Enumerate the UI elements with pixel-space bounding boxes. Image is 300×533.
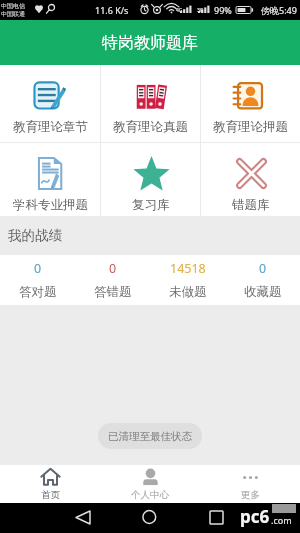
button[interactable]: 更多 bbox=[200, 465, 300, 503]
staticText: pc6 bbox=[240, 505, 270, 528]
staticText: 教育理论押题 bbox=[213, 119, 288, 135]
button[interactable]: 0 bbox=[225, 255, 300, 305]
button[interactable]: 学科专业押题 bbox=[0, 143, 100, 216]
staticText: 14518 bbox=[170, 260, 206, 277]
staticText: 教育理论真题 bbox=[113, 119, 188, 135]
staticText: 4G bbox=[176, 7, 183, 14]
staticText: 已清理至最佳状态 bbox=[108, 430, 192, 443]
staticText: .com bbox=[271, 514, 292, 526]
staticText: 中国电信 bbox=[1, 2, 25, 10]
staticText: 11.6 K/s bbox=[95, 4, 129, 16]
button[interactable]: 个人中心 bbox=[100, 465, 200, 503]
button[interactable]: 教育理论押题 bbox=[201, 65, 300, 142]
button[interactable]: 教育理论章节 bbox=[0, 65, 100, 142]
button[interactable]: 教育理论真题 bbox=[101, 65, 200, 142]
staticText: 答对题 bbox=[19, 284, 57, 300]
button[interactable]: 复习库 bbox=[101, 143, 200, 216]
button[interactable]: 错题库 bbox=[201, 143, 300, 216]
button[interactable]: 14518 bbox=[150, 255, 225, 305]
staticText: 答错题 bbox=[94, 284, 132, 300]
staticText: 复习库 bbox=[132, 197, 170, 213]
staticText: 0 bbox=[109, 260, 117, 277]
button[interactable]: 0 bbox=[75, 255, 150, 305]
staticText: 收藏题 bbox=[244, 284, 282, 300]
staticText: 错题库 bbox=[232, 197, 270, 213]
staticText: 教育理论章节 bbox=[13, 119, 88, 135]
staticText: 未做题 bbox=[169, 284, 207, 300]
staticText: 中国联通 bbox=[1, 10, 25, 18]
staticText: 更多 bbox=[241, 489, 260, 501]
staticText: 0 bbox=[34, 260, 42, 277]
staticText: 我的战绩 bbox=[8, 227, 62, 244]
staticText: 首页 bbox=[41, 489, 60, 501]
button[interactable]: 首页 bbox=[0, 465, 100, 503]
staticText: 个人中心 bbox=[131, 489, 169, 501]
staticText: 学科专业押题 bbox=[13, 197, 88, 213]
staticText: 3G bbox=[197, 7, 204, 14]
button[interactable]: 0 bbox=[0, 255, 75, 305]
staticText: 0 bbox=[259, 260, 267, 277]
staticText: 99% bbox=[214, 4, 232, 16]
staticText: 傍晚5:49 bbox=[261, 4, 297, 16]
staticText: 特岗教师题库 bbox=[102, 33, 198, 53]
